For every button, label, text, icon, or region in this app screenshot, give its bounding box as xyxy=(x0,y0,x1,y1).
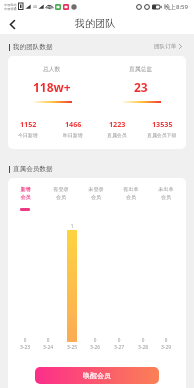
staticText: 1 xyxy=(62,223,82,229)
staticText: 0 xyxy=(38,337,58,343)
staticText: 23 xyxy=(134,79,148,95)
staticText: 我的团队 xyxy=(75,17,115,30)
staticText: 3-26 xyxy=(83,344,107,351)
staticText: 3-29 xyxy=(154,344,178,351)
button[interactable]: Back xyxy=(2,14,22,34)
button[interactable]: 未登录 会员 xyxy=(78,186,113,211)
staticText: 直属会员 xyxy=(107,132,127,138)
staticText: 直属会员数据 xyxy=(13,165,53,173)
staticText: 新增 会员 xyxy=(20,186,31,200)
staticText: 0 xyxy=(15,337,35,343)
staticText: 3-23 xyxy=(13,344,37,351)
staticText: 4G xyxy=(33,5,38,9)
staticText: 我的团队数据 xyxy=(13,43,53,51)
button[interactable]: 有出单 会员 xyxy=(113,186,148,211)
staticText: 0 xyxy=(85,337,105,343)
staticText: 118w+ xyxy=(33,79,71,95)
staticText: 1223 xyxy=(109,119,126,129)
button[interactable]: 团队订单 xyxy=(154,43,182,50)
staticText: 未登录 会员 xyxy=(88,186,104,200)
staticText: 今日新增 xyxy=(18,132,38,138)
staticText: 未出单 会员 xyxy=(158,186,174,200)
staticText: 0 xyxy=(109,337,129,343)
staticText: 0 xyxy=(156,337,176,343)
staticText: 团队订单 xyxy=(154,43,177,50)
staticText: 0 xyxy=(133,337,153,343)
staticText: 直属总监 xyxy=(129,65,153,72)
staticText: 13535 xyxy=(152,119,173,129)
button[interactable]: 唤醒会员 xyxy=(35,367,159,384)
staticText: 有登录 会员 xyxy=(53,186,69,200)
staticText: 3-24 xyxy=(36,344,60,351)
button[interactable]: 未出单 会员 xyxy=(148,186,183,211)
staticText: 昨日新增 xyxy=(63,132,83,138)
staticText: 1466 xyxy=(65,119,82,129)
staticText: 中国电信 xyxy=(4,3,17,7)
staticText: 中国联通 xyxy=(4,7,17,11)
button[interactable]: 有登录 会员 xyxy=(43,186,78,211)
staticText: 唤醒会员 xyxy=(83,371,111,380)
staticText: 3-28 xyxy=(131,344,155,351)
staticText: 总人数 xyxy=(43,65,61,72)
staticText: 有出单 会员 xyxy=(123,186,139,200)
button[interactable]: 新增 会员 xyxy=(7,186,43,211)
staticText: 3-27 xyxy=(107,344,131,351)
staticText: 3-25 xyxy=(60,344,84,351)
staticText: 直属会员下级 xyxy=(147,132,177,138)
staticText: 1152 xyxy=(20,119,37,129)
staticText: 晚上8:59 xyxy=(164,3,188,11)
